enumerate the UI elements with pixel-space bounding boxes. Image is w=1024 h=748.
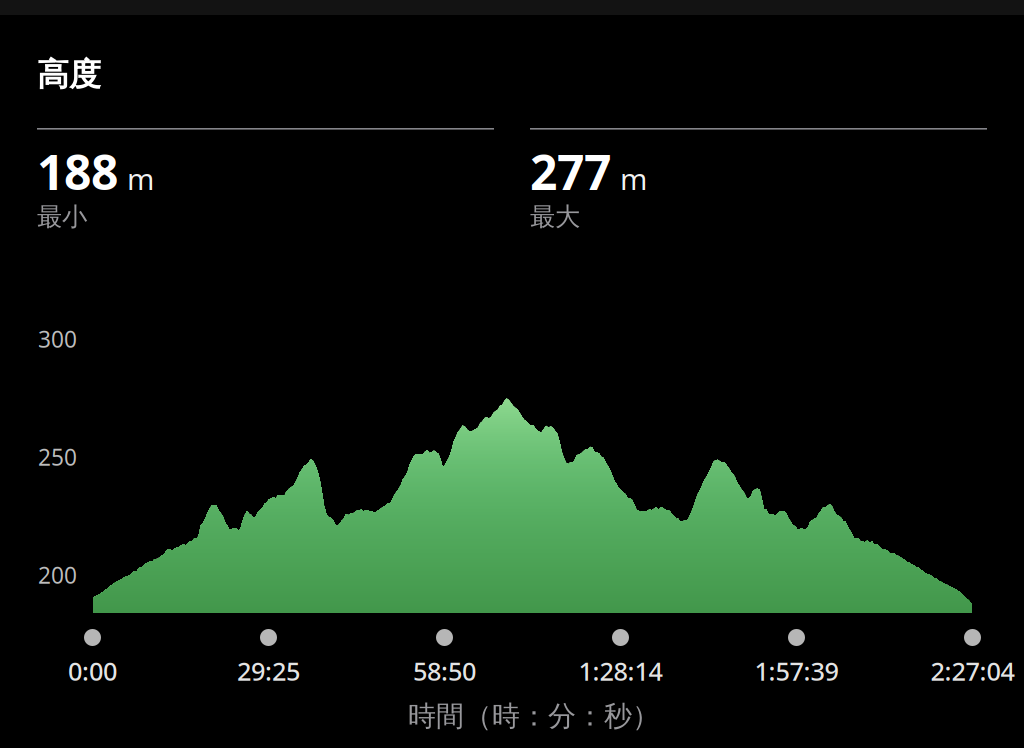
staticText: 277 — [530, 140, 611, 203]
button[interactable]: 277 — [530, 128, 987, 232]
staticText: 250 — [38, 442, 77, 472]
staticText: 0:00 — [68, 654, 117, 688]
staticText: m — [620, 159, 647, 198]
staticText: m — [127, 159, 154, 198]
staticText: 300 — [38, 324, 77, 354]
staticText: 最大 — [530, 201, 580, 232]
staticText: 188 — [37, 140, 118, 203]
staticText: 高度 — [37, 55, 101, 94]
button[interactable]: 188 — [37, 128, 494, 232]
staticText: 2:27:04 — [930, 654, 1014, 688]
staticText: 最小 — [37, 201, 87, 232]
staticText: 時間（時：分：秒） — [408, 699, 660, 733]
staticText: 58:50 — [413, 654, 476, 688]
staticText: 29:25 — [237, 654, 300, 688]
staticText: 1:57:39 — [754, 654, 838, 688]
staticText: 1:28:14 — [578, 654, 662, 688]
staticText: 200 — [38, 560, 77, 590]
